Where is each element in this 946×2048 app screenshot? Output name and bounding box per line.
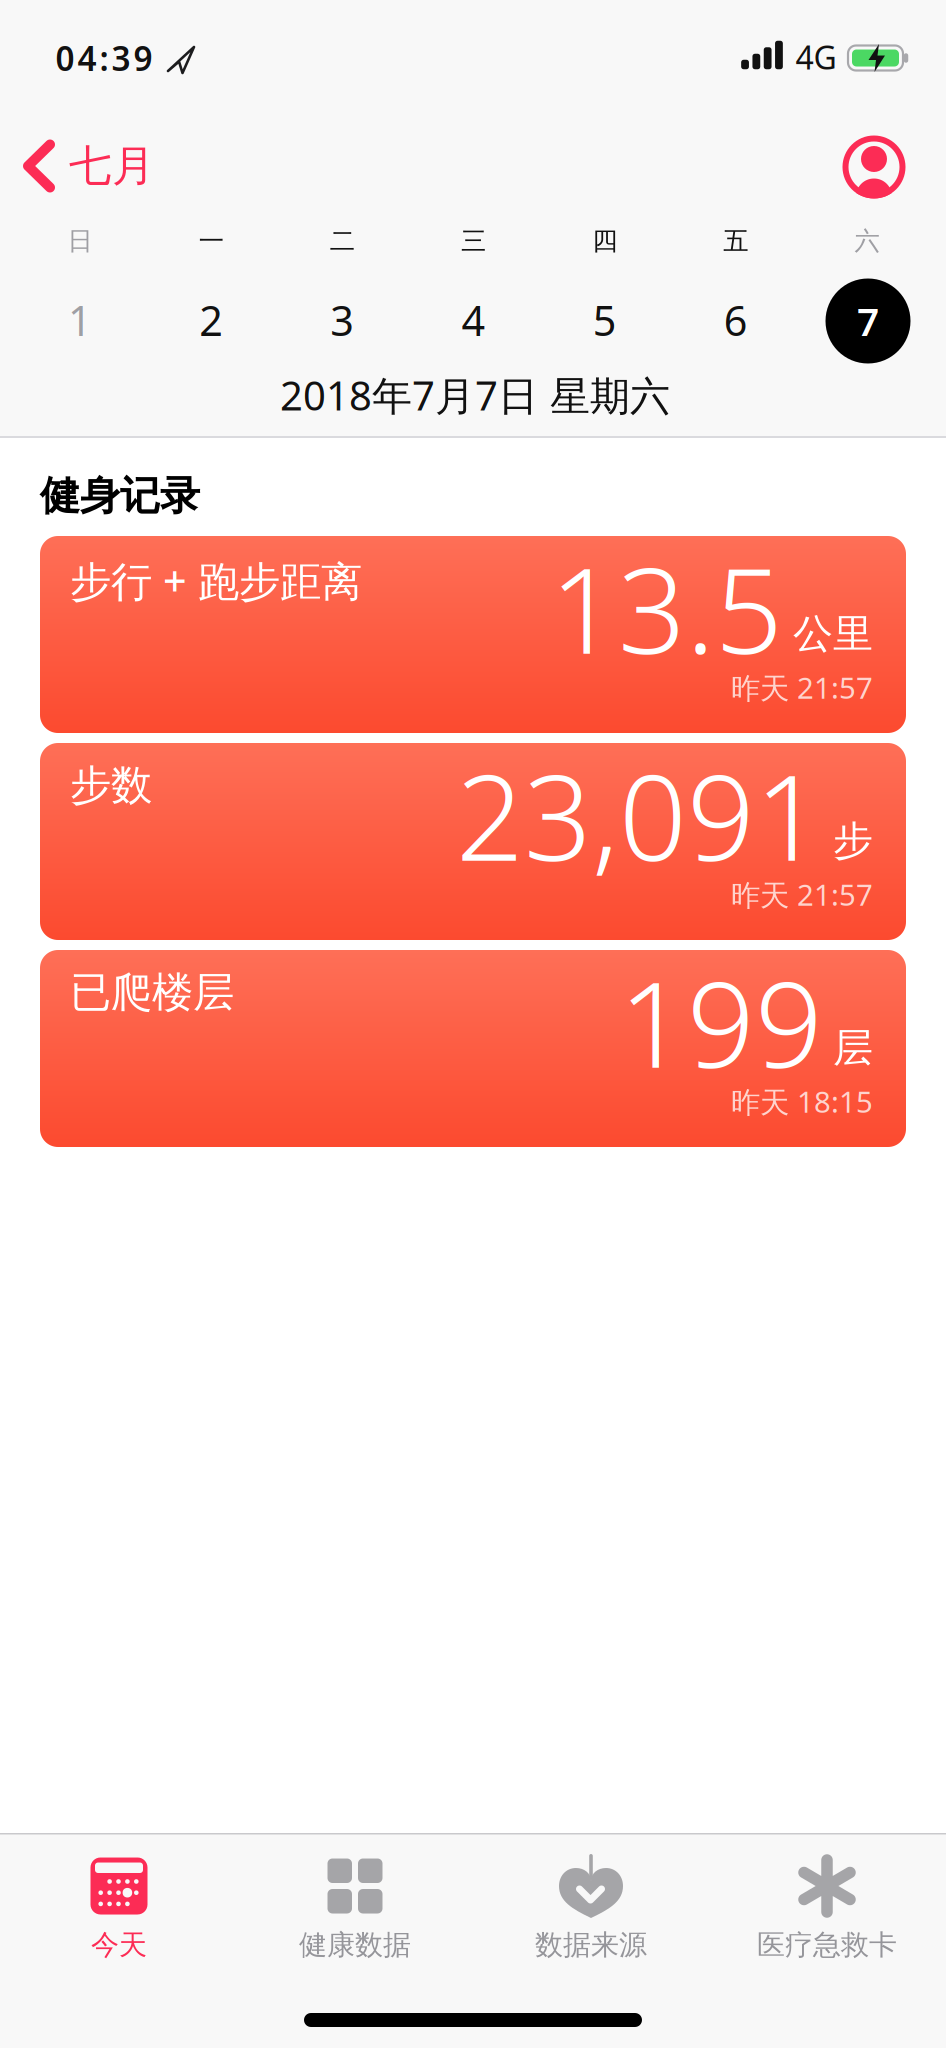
button[interactable]: 数据来源: [473, 1836, 709, 1976]
staticText: 层: [833, 1023, 873, 1073]
staticText: 二: [330, 225, 355, 256]
staticText: 4: [461, 293, 485, 347]
staticText: 13.5: [550, 529, 783, 687]
staticText: 5: [593, 293, 617, 347]
staticText: 四: [592, 225, 617, 256]
staticText: 2018年7月7日 星期六: [280, 368, 670, 421]
staticText: 步行 + 跑步距离: [70, 553, 362, 608]
button[interactable]: 今天: [1, 1836, 237, 1976]
staticText: 3: [330, 293, 354, 347]
button[interactable]: 七月: [23, 139, 155, 192]
staticText: 23,091: [456, 736, 823, 894]
staticText: 健身记录: [40, 471, 200, 520]
button[interactable]: 4: [461, 293, 485, 347]
staticText: 7: [857, 295, 879, 347]
staticText: 昨天 21:57: [731, 875, 873, 914]
staticText: 日: [67, 225, 92, 256]
staticText: 六: [854, 225, 879, 256]
staticText: 健康数据: [299, 1928, 411, 1962]
staticText: 步数: [70, 760, 152, 811]
button[interactable]: 个人资料: [842, 135, 905, 198]
staticText: 1: [68, 293, 92, 347]
staticText: 数据来源: [535, 1928, 647, 1962]
button[interactable]: 步行 + 跑步距离: [40, 536, 906, 733]
staticText: 6: [724, 293, 748, 347]
staticText: 五: [723, 225, 748, 256]
button[interactable]: 7: [825, 278, 910, 363]
staticText: 昨天 21:57: [731, 668, 873, 707]
staticText: 七月: [69, 140, 155, 192]
button[interactable]: 医疗急救卡: [709, 1836, 945, 1976]
staticText: 步: [833, 816, 873, 866]
staticText: 一: [199, 225, 224, 256]
staticText: 已爬楼层: [70, 967, 234, 1018]
button[interactable]: 5: [593, 293, 617, 347]
staticText: 2: [199, 293, 223, 347]
staticText: 医疗急救卡: [757, 1928, 897, 1962]
staticText: 三: [461, 225, 486, 256]
button[interactable]: 步数: [40, 743, 906, 940]
staticText: 昨天 18:15: [731, 1082, 873, 1121]
button[interactable]: 3: [330, 293, 354, 347]
staticText: 199: [619, 943, 823, 1101]
staticText: 公里: [793, 609, 873, 659]
button[interactable]: 6: [724, 293, 748, 347]
button[interactable]: 2: [199, 293, 223, 347]
staticText: 4G: [795, 36, 836, 78]
button[interactable]: 1: [68, 293, 92, 347]
staticText: 04:39: [55, 36, 152, 80]
button[interactable]: 健康数据: [237, 1836, 473, 1976]
button[interactable]: 已爬楼层: [40, 950, 906, 1147]
staticText: 今天: [91, 1928, 147, 1962]
